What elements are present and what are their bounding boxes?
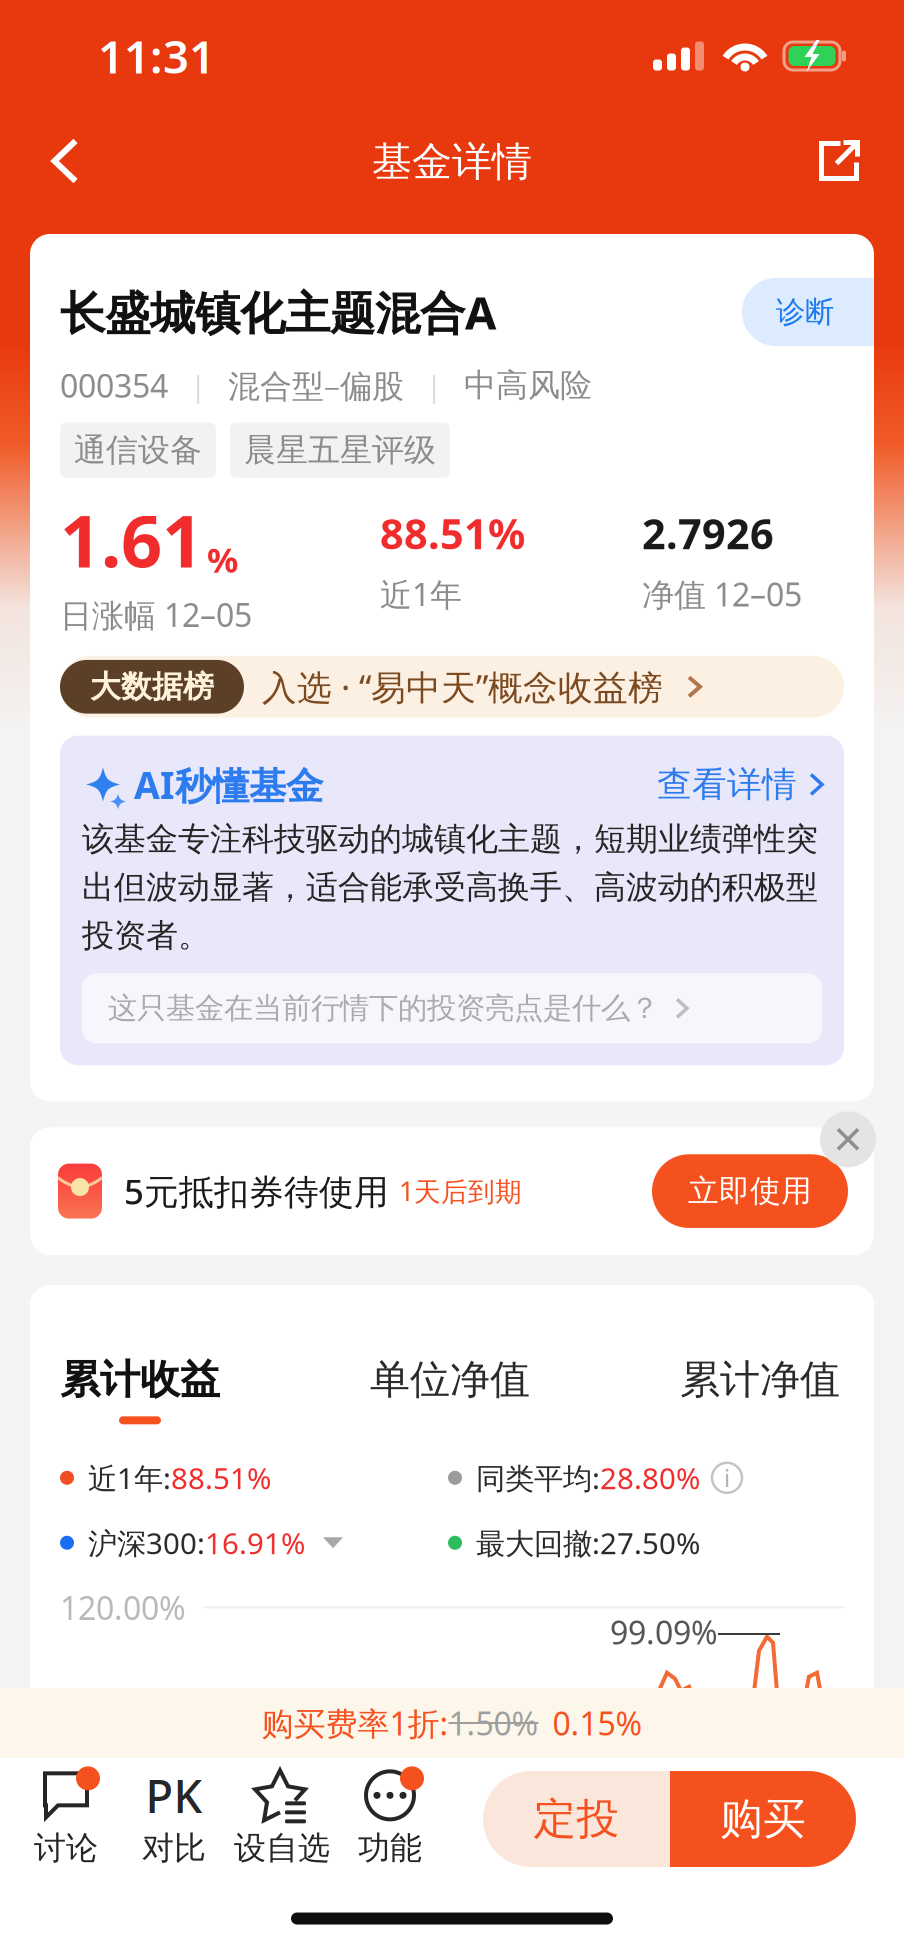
staticText: AI秒懂基金 — [134, 760, 323, 809]
staticText: 2.7926 — [642, 506, 774, 561]
button[interactable]: 功能 — [336, 1764, 444, 1874]
staticText: 88.51% — [380, 506, 525, 561]
button[interactable]: 关闭 — [820, 1111, 876, 1167]
staticText: 大数据榜 — [90, 668, 214, 706]
staticText: 晨星五星评级 — [244, 430, 436, 470]
staticText: 中高风险 — [464, 366, 592, 405]
staticText: 近1年: — [88, 1458, 171, 1497]
staticText: 该基金专注科技驱动的城镇化主题，短期业绩弹性突出但波动显著，适合能承受高换手、高… — [82, 819, 818, 955]
staticText: 99.09% — [610, 1611, 718, 1653]
button[interactable]: PK — [120, 1764, 228, 1874]
staticText: % — [207, 536, 238, 582]
staticText: 通信设备 — [74, 430, 202, 470]
staticText: 基金详情 — [372, 137, 532, 186]
staticText: 27.50% — [600, 1523, 700, 1562]
staticText: 88.51% — [171, 1458, 271, 1497]
staticText: 1.50% — [448, 1702, 538, 1744]
button[interactable]: 定投 — [483, 1771, 670, 1867]
button[interactable]: 返回 — [28, 124, 102, 198]
button[interactable]: 累计收益 — [60, 1355, 220, 1424]
staticText: 16.91% — [205, 1523, 305, 1562]
staticText: 近1年 — [380, 573, 462, 615]
button[interactable]: 诊断 — [742, 278, 844, 346]
staticText: 讨论 — [34, 1828, 98, 1868]
staticText: | — [426, 366, 442, 405]
staticText: 11:31 — [98, 26, 215, 86]
staticText: 同类平均: — [476, 1458, 600, 1497]
staticText: 净值 12–05 — [642, 573, 802, 615]
staticText: 累计净值 — [680, 1355, 840, 1404]
staticText: 沪深300: — [88, 1523, 205, 1562]
staticText: 累计收益 — [60, 1355, 220, 1404]
staticText: 长盛城镇化主题混合A — [60, 282, 496, 342]
staticText: 混合型–偏股 — [228, 364, 404, 406]
staticText: 定投 — [533, 1793, 619, 1845]
staticText: 000354 — [60, 364, 168, 406]
staticText: 功能 — [358, 1828, 422, 1868]
button[interactable]: 单位净值 — [370, 1355, 530, 1424]
staticText: 日涨幅 12–05 — [60, 593, 252, 636]
staticText: 单位净值 — [370, 1355, 530, 1404]
staticText: 购买 — [720, 1793, 806, 1845]
button[interactable]: 大数据榜 — [60, 656, 844, 718]
button[interactable]: 设自选 — [228, 1764, 336, 1874]
staticText: 1.61 — [60, 492, 203, 587]
staticText: 120.00% — [60, 1586, 186, 1629]
staticText: 查看详情 — [657, 763, 797, 806]
staticText: 最大回撤: — [476, 1523, 600, 1562]
button[interactable]: 立即使用 — [652, 1154, 848, 1228]
staticText: 0.15% — [552, 1702, 642, 1744]
button[interactable]: 这只基金在当前行情下的投资亮点是什么？ — [82, 973, 822, 1043]
staticText: 购买费率1折: — [261, 1702, 448, 1744]
staticText: 这只基金在当前行情下的投资亮点是什么？ — [108, 990, 659, 1026]
staticText: 1天后到期 — [399, 1173, 522, 1209]
staticText: 28.80% — [600, 1458, 700, 1497]
button[interactable]: 查看详情 — [657, 763, 822, 806]
button[interactable]: 购买 — [670, 1771, 856, 1867]
staticText: 设自选 — [234, 1828, 330, 1868]
button[interactable]: 分享 — [802, 124, 876, 198]
staticText: 诊断 — [776, 294, 834, 330]
staticText: 对比 — [142, 1828, 206, 1868]
staticText: PK — [145, 1765, 202, 1825]
button[interactable]: 累计净值 — [680, 1355, 840, 1424]
button[interactable]: 讨论 — [12, 1764, 120, 1874]
staticText: 5元抵扣券待使用 — [124, 1168, 389, 1214]
staticText: 立即使用 — [688, 1172, 812, 1210]
staticText: 入选 · “易中天”概念收益榜 — [262, 664, 663, 710]
staticText: | — [190, 366, 206, 405]
staticText: i — [724, 1462, 730, 1494]
